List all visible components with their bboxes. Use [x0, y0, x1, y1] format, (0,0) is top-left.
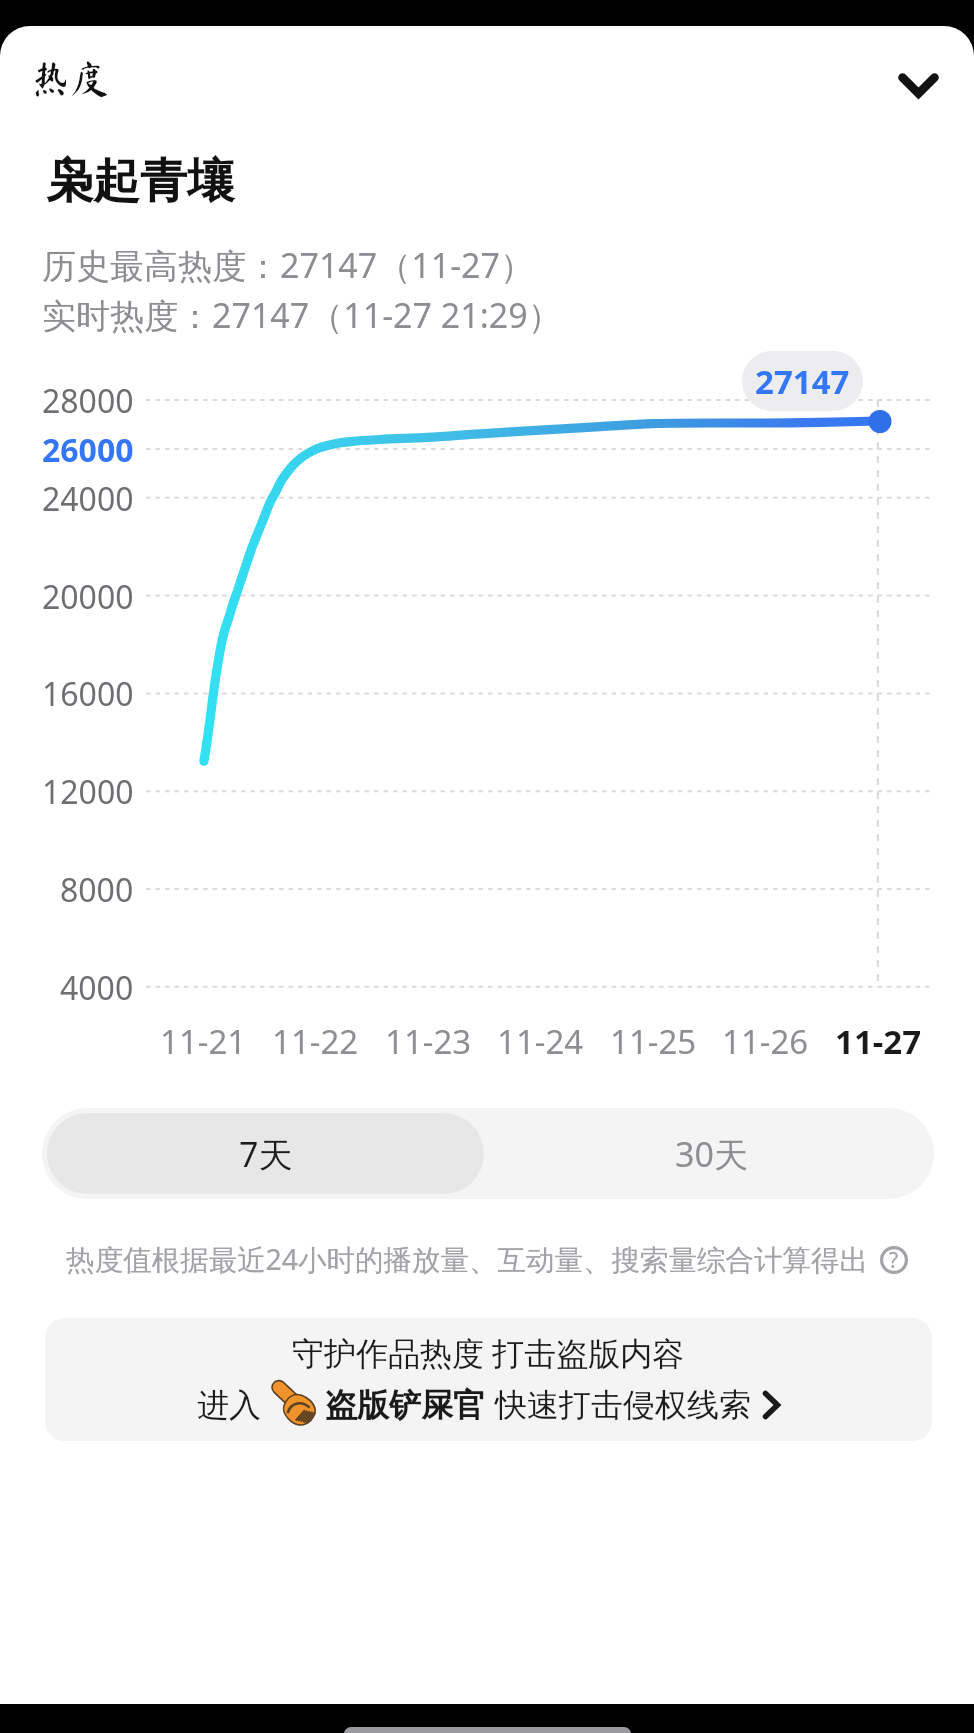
staticText: 16000 — [42, 672, 134, 716]
staticText: 8000 — [60, 868, 134, 912]
staticText: 进入 — [197, 1385, 261, 1425]
staticText: 11-25 — [610, 1019, 697, 1064]
staticText: 热度值根据最近24小时的播放量、互动量、搜索量综合计算得出 — [66, 1240, 869, 1279]
staticText: 盗版铲屎官 — [325, 1385, 485, 1425]
button[interactable]: 热度说明 — [879, 1245, 909, 1275]
staticText: 4000 — [60, 966, 134, 1010]
staticText: 枭起青壤 — [46, 152, 234, 211]
staticText: 26000 — [42, 428, 134, 472]
staticText: ? — [889, 1246, 899, 1275]
staticText: 11-26 — [722, 1019, 809, 1064]
staticText: 27147 — [755, 359, 850, 404]
button[interactable]: 守护作品热度 打击盗版内容 — [45, 1318, 932, 1441]
staticText: 11-22 — [272, 1019, 359, 1064]
staticText: 20000 — [42, 575, 134, 619]
staticText: 7天 — [239, 1131, 293, 1177]
staticText: 24000 — [42, 477, 134, 521]
staticText: 11-21 — [160, 1019, 247, 1064]
staticText: 守护作品热度 打击盗版内容 — [292, 1331, 685, 1375]
button[interactable]: 30天 — [489, 1108, 934, 1199]
button[interactable]: 收起 — [882, 49, 954, 121]
staticText: 热度 — [31, 59, 110, 98]
staticText: 12000 — [42, 770, 134, 814]
staticText: 28000 — [42, 379, 134, 423]
staticText: 30天 — [675, 1131, 748, 1177]
staticText: 实时热度：27147（11-27 21:29） — [42, 292, 562, 338]
staticText: 历史最高热度：27147（11-27） — [42, 242, 534, 288]
staticText: 快速打击侵权线索 — [495, 1385, 751, 1425]
staticText: 11-24 — [497, 1019, 584, 1064]
button[interactable]: 7天 — [47, 1113, 484, 1194]
staticText: 11-27 — [835, 1019, 922, 1064]
staticText: 11-23 — [385, 1019, 472, 1064]
